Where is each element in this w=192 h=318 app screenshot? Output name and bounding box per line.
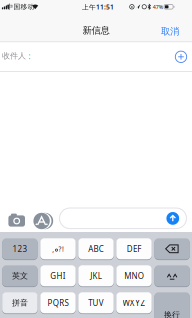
- staticText: ,: [52, 245, 54, 254]
- staticText: 新信息: [82, 25, 109, 36]
- staticText: JKL: [90, 270, 102, 281]
- staticText: TUV: [88, 297, 104, 308]
- staticText: 收件人: [2, 51, 26, 61]
- button[interactable]: JKL: [78, 265, 114, 287]
- staticText: GHI: [50, 270, 66, 281]
- button[interactable]: 英文: [2, 265, 38, 287]
- button[interactable]: 发送: [166, 212, 179, 225]
- button[interactable]: 123: [2, 238, 38, 260]
- staticText: 拼音: [12, 298, 28, 308]
- staticText: 47%: [153, 3, 163, 10]
- button[interactable]: 删除: [154, 238, 190, 260]
- staticText: 123: [12, 243, 27, 254]
- button[interactable]: 相机: [7, 211, 27, 231]
- staticText: !: [62, 244, 64, 253]
- button[interactable]: 表情: [154, 265, 190, 287]
- staticText: 英文: [12, 271, 28, 281]
- staticText: MNO: [124, 270, 144, 281]
- staticText: DEF: [127, 243, 141, 254]
- staticText: 上午11:51: [82, 2, 114, 11]
- button[interactable]: PQRS: [40, 292, 76, 314]
- button[interactable]: ABC: [78, 238, 114, 260]
- staticText: :: [28, 51, 30, 61]
- button[interactable]: 添加联系人: [174, 50, 188, 64]
- staticText: ?: [58, 244, 61, 253]
- button[interactable]: MNO: [116, 265, 152, 287]
- button[interactable]: WXYZ: [116, 292, 152, 314]
- staticText: 中国移动: [6, 3, 34, 11]
- button[interactable]: GHI: [40, 265, 76, 287]
- staticText: WXYZ: [123, 297, 145, 308]
- staticText: 取消: [161, 26, 179, 37]
- button[interactable]: DEF: [116, 238, 152, 260]
- button[interactable]: 换行: [154, 292, 190, 318]
- staticText: 换行: [164, 310, 180, 318]
- button[interactable]: 取消: [157, 23, 183, 39]
- button[interactable]: 拼音: [2, 292, 38, 314]
- button[interactable]: App Store: [33, 212, 51, 230]
- staticText: PQRS: [48, 297, 68, 308]
- button[interactable]: TUV: [78, 292, 114, 314]
- button[interactable]: ,。?!: [40, 238, 76, 260]
- staticText: ABC: [88, 243, 104, 254]
